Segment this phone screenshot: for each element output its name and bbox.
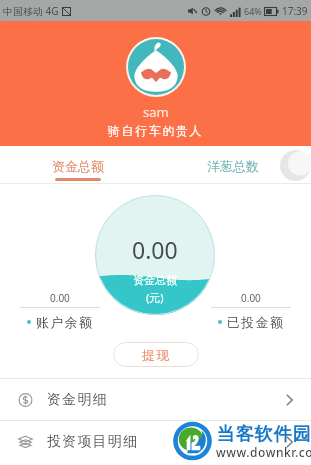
staticText: www.downkr.com (216, 444, 311, 460)
staticText: 资金总额 (133, 273, 177, 287)
staticText: 已投金额 (227, 314, 285, 330)
staticText: 投资项目明细 (47, 433, 139, 451)
staticText: 中国移动 4G (3, 4, 59, 18)
staticText: 资金总额 (52, 158, 104, 174)
staticText: 当客软件园 (216, 423, 311, 446)
button[interactable]: 提现 (113, 342, 199, 367)
button[interactable]: 资金明细 (0, 379, 311, 420)
staticText: 17:39 (282, 4, 308, 18)
staticText: sam (143, 103, 169, 121)
staticText: 64% (244, 5, 262, 17)
staticText: (元) (146, 290, 164, 305)
staticText: 资金明细 (47, 391, 108, 409)
button[interactable]: 洋葱总数 (155, 146, 311, 184)
staticText: 0.00 (50, 291, 70, 305)
staticText: 提现 (142, 347, 171, 363)
button[interactable]: 资金总额 (0, 146, 155, 184)
button[interactable]: 投资项目明细 (0, 421, 311, 462)
staticText: 0.00 (132, 234, 178, 265)
staticText: 洋葱总数 (207, 158, 259, 174)
staticText: 骑自行车的贵人 (108, 123, 204, 138)
staticText: 0.00 (241, 291, 261, 305)
staticText: 账户余额 (36, 314, 94, 330)
